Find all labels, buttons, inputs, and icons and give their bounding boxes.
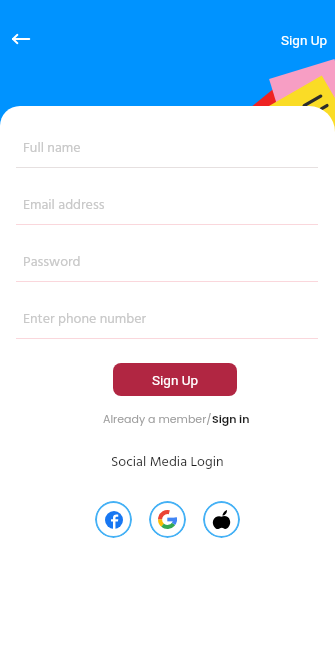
staticText: Enter phone number xyxy=(23,308,147,330)
staticText: Sign Up xyxy=(152,372,199,388)
staticText: Sign Up xyxy=(281,32,328,48)
staticText: Already a member/ xyxy=(103,411,212,426)
button[interactable]: Sign in with Facebook xyxy=(95,501,132,538)
button[interactable]: Email address xyxy=(16,188,318,225)
button[interactable]: Password xyxy=(16,245,318,282)
staticText: Sign in xyxy=(212,411,250,426)
staticText: Social Media Login xyxy=(111,451,224,473)
button[interactable]: Sign Up xyxy=(276,28,333,52)
staticText: Full name xyxy=(23,137,81,159)
staticText: Email address xyxy=(23,194,105,216)
button[interactable]: Sign Up xyxy=(113,363,237,396)
staticText: Password xyxy=(23,251,81,273)
button[interactable]: Sign in with Apple xyxy=(203,501,240,538)
button[interactable]: Full name xyxy=(16,131,318,168)
button[interactable]: Already a member/ xyxy=(99,409,254,428)
button[interactable]: Back xyxy=(4,21,40,57)
button[interactable]: Sign in with Google xyxy=(149,501,186,538)
button[interactable]: Enter phone number xyxy=(16,302,318,339)
